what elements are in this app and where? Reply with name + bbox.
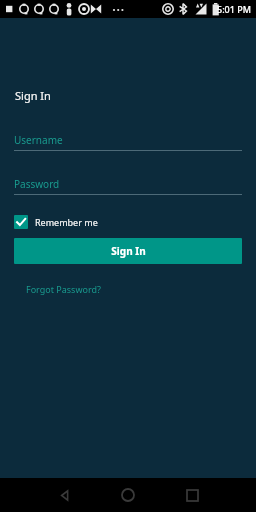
staticText: Sign In — [111, 244, 146, 258]
button[interactable]: Back — [46, 478, 82, 512]
staticText: Remember me — [35, 216, 98, 228]
button[interactable]: Home — [110, 478, 146, 512]
staticText: Password — [14, 177, 60, 191]
button[interactable]: Remember me — [14, 214, 98, 230]
staticText: 5:01 PM — [217, 3, 251, 15]
staticText: Username — [14, 133, 63, 147]
button[interactable]: Password — [14, 177, 242, 195]
button[interactable]: Username — [14, 133, 242, 151]
staticText: Forgot Password? — [26, 283, 101, 295]
staticText: Sign In — [15, 88, 51, 103]
button[interactable]: Sign In — [14, 238, 242, 264]
button[interactable]: Forgot Password? — [14, 281, 105, 297]
button[interactable]: Recent apps — [174, 478, 210, 512]
